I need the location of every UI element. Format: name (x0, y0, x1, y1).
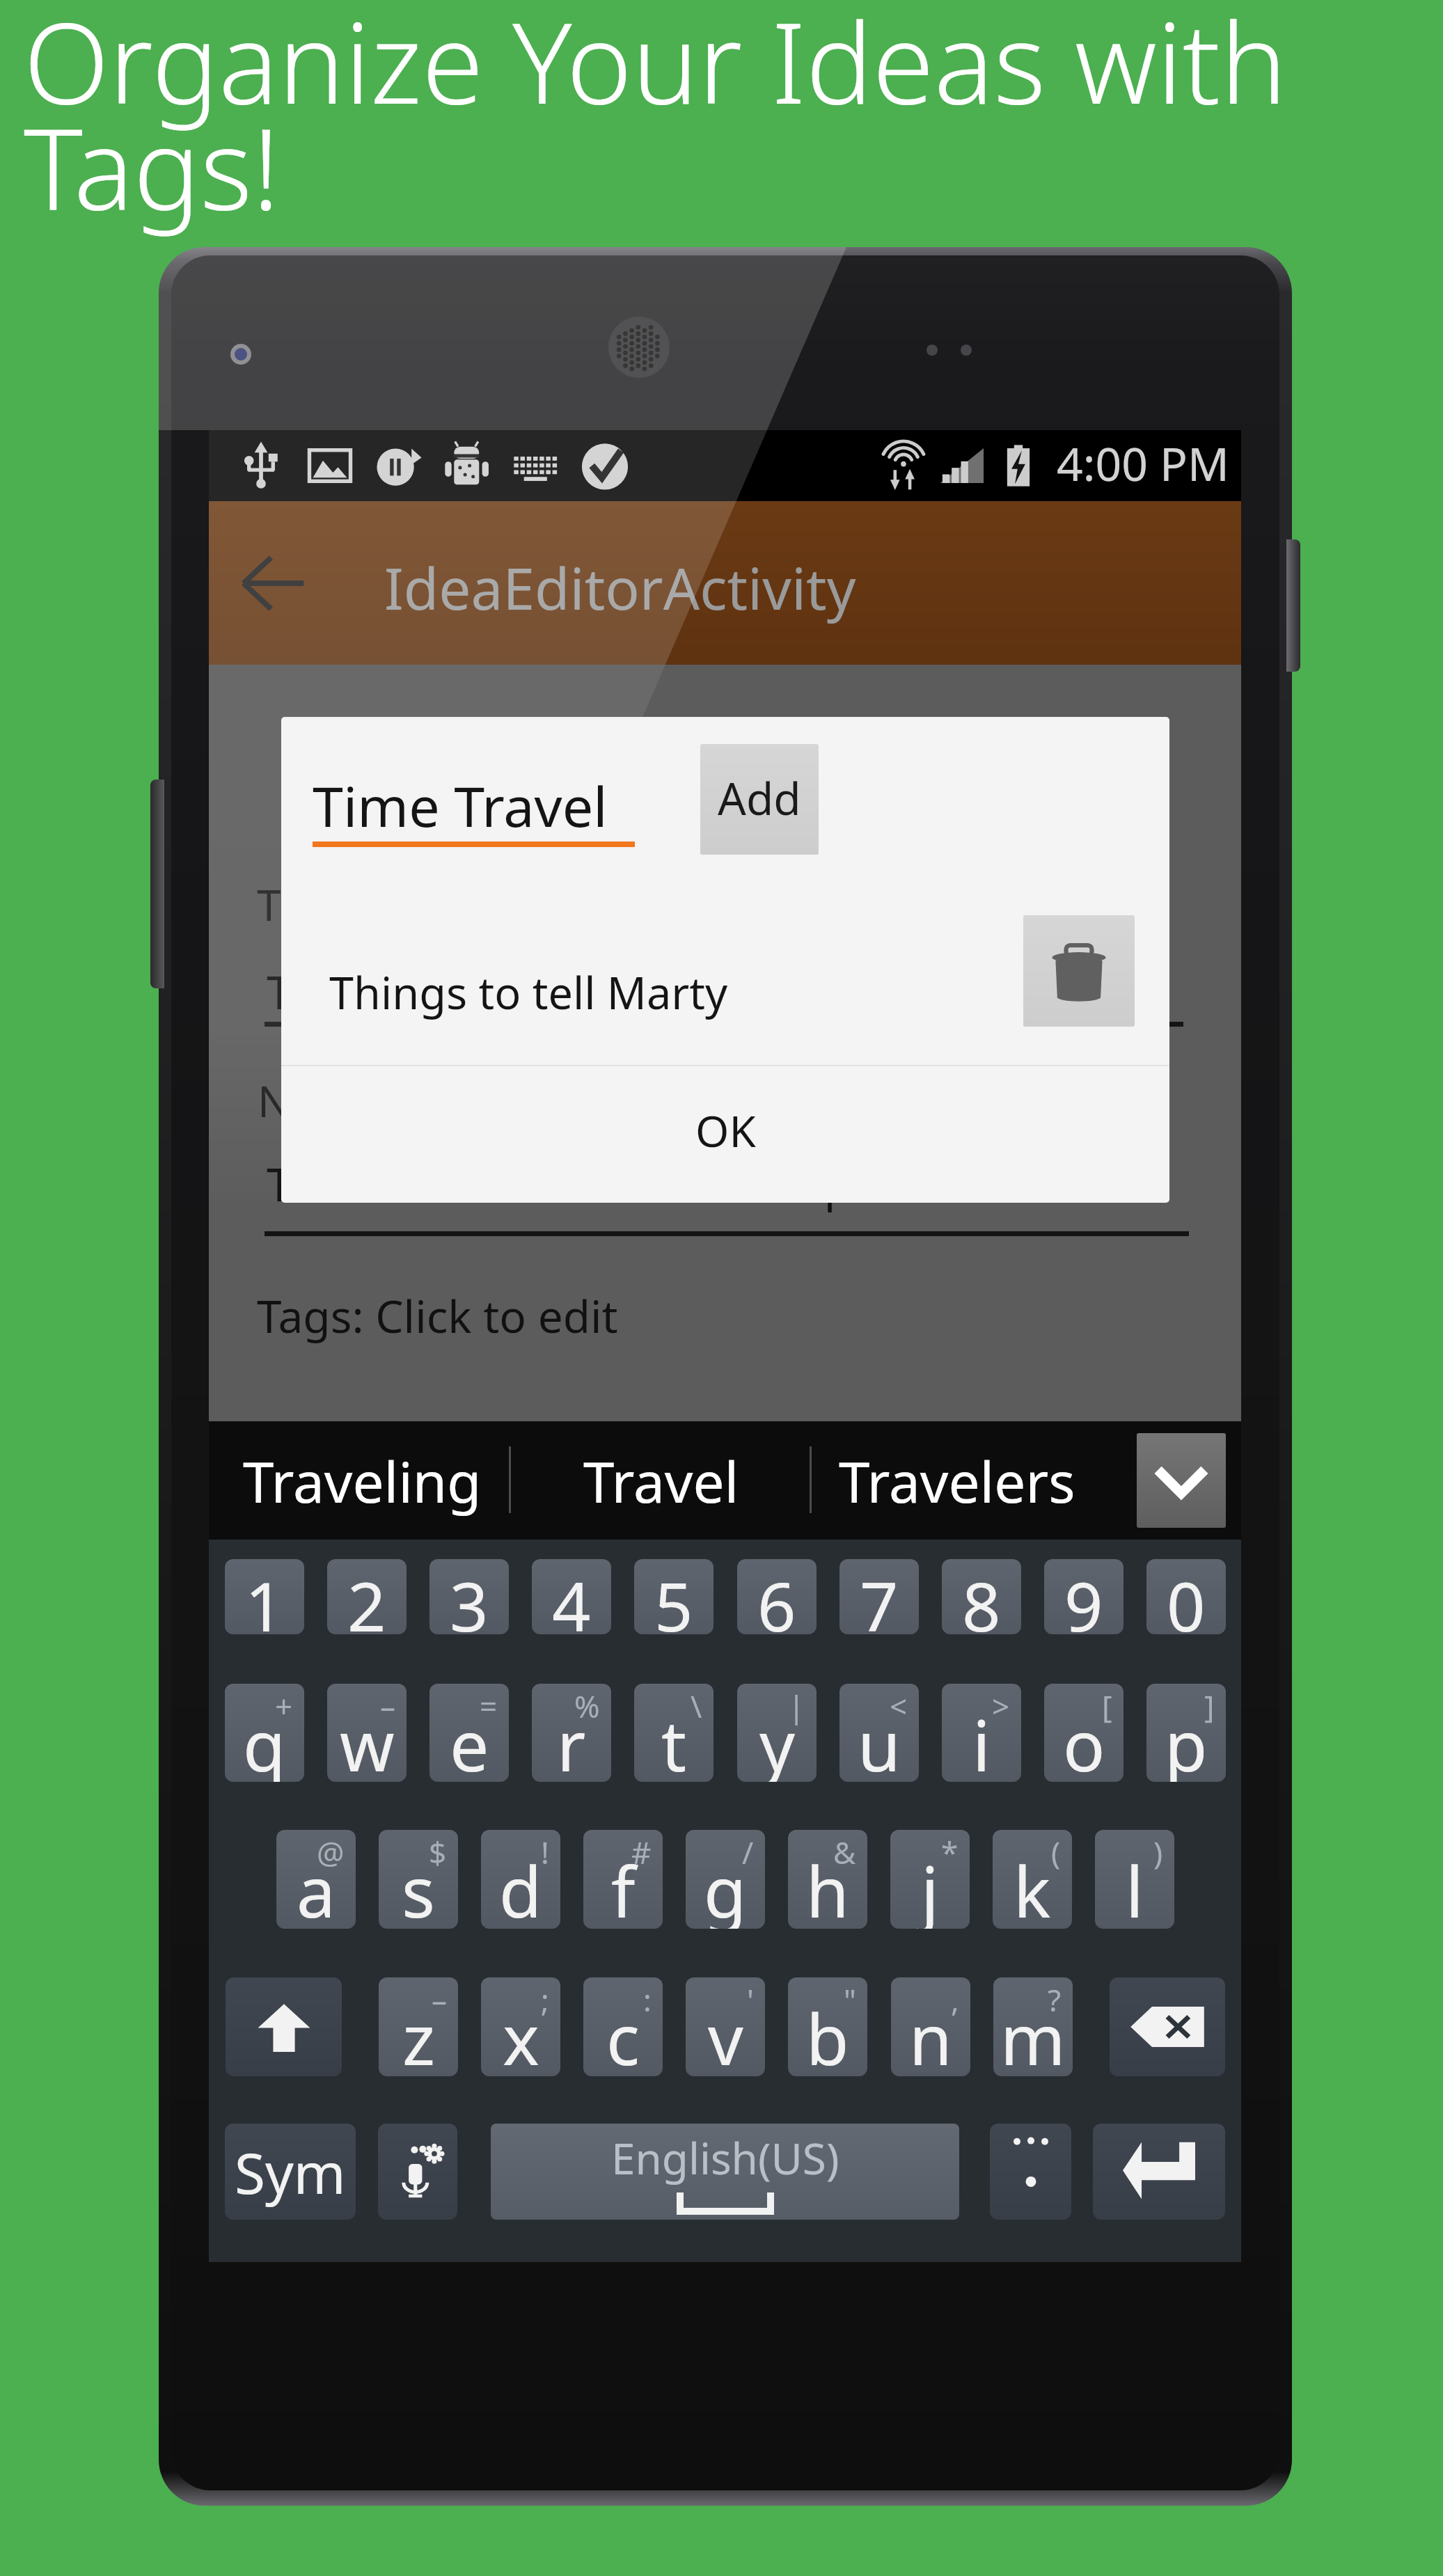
staticText: x (503, 1991, 539, 2076)
staticText: n (909, 1991, 952, 2076)
button[interactable]: English(US) (491, 2124, 959, 2220)
button[interactable]: Delete tag (1023, 915, 1135, 1027)
staticText: p (1165, 1697, 1208, 1782)
button[interactable]: w (327, 1684, 407, 1782)
staticText: b (806, 1991, 849, 2076)
button[interactable]: n (891, 1977, 970, 2076)
staticText: Sym (235, 2134, 346, 2210)
staticText: 7 (860, 1559, 899, 1634)
button[interactable]: 8 (942, 1559, 1021, 1634)
staticText: g (704, 1843, 747, 1929)
staticText: k (1014, 1843, 1051, 1929)
staticText: 3 (450, 1559, 489, 1634)
button[interactable]: b (788, 1977, 867, 2076)
button[interactable]: u (839, 1684, 919, 1782)
staticText: 9 (1064, 1559, 1103, 1634)
staticText: @ (317, 1831, 345, 1873)
button[interactable]: r (532, 1684, 611, 1782)
staticText: o (1063, 1697, 1105, 1782)
button[interactable]: 3 (429, 1559, 509, 1634)
button[interactable]: Enter (1093, 2124, 1225, 2220)
staticText: [ (1102, 1685, 1112, 1727)
button[interactable]: 2 (327, 1559, 407, 1634)
button[interactable]: i (942, 1684, 1021, 1782)
staticText: d (499, 1843, 542, 1929)
button[interactable]: p (1146, 1684, 1226, 1782)
button[interactable]: o (1044, 1684, 1123, 1782)
staticText: OK (695, 1101, 756, 1160)
staticText: c (606, 1991, 640, 2076)
staticText: 5 (654, 1559, 693, 1634)
button[interactable]: m (993, 1977, 1073, 2076)
button[interactable]: Back (221, 501, 326, 665)
button[interactable]: Add (700, 744, 819, 855)
button[interactable]: 9 (1044, 1559, 1123, 1634)
staticText: IdeaEditorActivity (384, 548, 856, 626)
staticText: s (402, 1843, 435, 1929)
staticText: English(US) (611, 2128, 839, 2187)
button[interactable]: 7 (839, 1559, 919, 1634)
staticText: y (759, 1697, 795, 1782)
staticText: ) (1153, 1831, 1163, 1873)
button[interactable]: Period (990, 2124, 1071, 2220)
button[interactable]: q (225, 1684, 304, 1782)
staticText: + (275, 1685, 293, 1727)
button[interactable]: 6 (737, 1559, 817, 1634)
button[interactable]: z (379, 1977, 458, 2076)
staticText: 8 (962, 1559, 1001, 1634)
staticText: < (890, 1685, 908, 1727)
button[interactable]: k (993, 1830, 1072, 1929)
button[interactable]: Traveling (237, 1421, 487, 1540)
staticText: ' (747, 1979, 754, 2021)
staticText: ( (1051, 1831, 1061, 1873)
staticText: 0 (1167, 1559, 1206, 1634)
button[interactable]: Travelers (835, 1421, 1079, 1540)
button[interactable]: Backspace (1110, 1977, 1225, 2076)
button[interactable]: x (481, 1977, 560, 2076)
button[interactable]: v (686, 1977, 765, 2076)
staticText: e (450, 1697, 489, 1782)
staticText: q (243, 1697, 286, 1782)
staticText: Notes (258, 1071, 377, 1130)
button[interactable]: Travel (571, 1421, 752, 1540)
button[interactable]: h (788, 1830, 867, 1929)
button[interactable]: More suggestions (1137, 1433, 1226, 1528)
staticText: % (574, 1685, 600, 1727)
button[interactable]: 1 (225, 1559, 304, 1634)
button[interactable]: f (583, 1830, 663, 1929)
button[interactable]: d (481, 1830, 560, 1929)
button[interactable]: Voice input (378, 2124, 457, 2220)
staticText: Organize Your Ideas with Tags! (24, 0, 1287, 242)
button[interactable]: OK (281, 1066, 1169, 1203)
staticText: 6 (757, 1559, 796, 1634)
staticText: " (844, 1979, 856, 2021)
button[interactable]: l (1095, 1830, 1174, 1929)
staticText: z (402, 1991, 435, 2076)
button[interactable]: 5 (634, 1559, 713, 1634)
staticText: w (340, 1697, 395, 1782)
staticText: Travel (583, 1443, 739, 1519)
staticText: ! (541, 1831, 549, 1873)
staticText: v (708, 1991, 743, 2076)
staticText: Time Travel (313, 768, 608, 844)
staticText: | (788, 1685, 805, 1727)
button[interactable]: g (686, 1830, 765, 1929)
button[interactable]: t (634, 1684, 713, 1782)
button[interactable]: s (379, 1830, 458, 1929)
staticText: l (1126, 1843, 1144, 1929)
button[interactable]: y (737, 1684, 817, 1782)
button[interactable]: j (890, 1830, 970, 1929)
staticText: – (432, 1979, 447, 2021)
button[interactable]: e (429, 1684, 509, 1782)
staticText: 2 (347, 1559, 386, 1634)
button[interactable]: 4 (532, 1559, 611, 1634)
staticText: = (480, 1685, 498, 1727)
button[interactable]: Sym (225, 2124, 356, 2220)
button[interactable]: c (583, 1977, 663, 2076)
button[interactable]: 0 (1146, 1559, 1226, 1634)
button[interactable]: Shift (226, 1977, 342, 2076)
staticText: ] (1204, 1685, 1215, 1727)
button[interactable]: a (276, 1830, 356, 1929)
staticText: / (742, 1831, 754, 1873)
staticText: t (661, 1697, 687, 1782)
